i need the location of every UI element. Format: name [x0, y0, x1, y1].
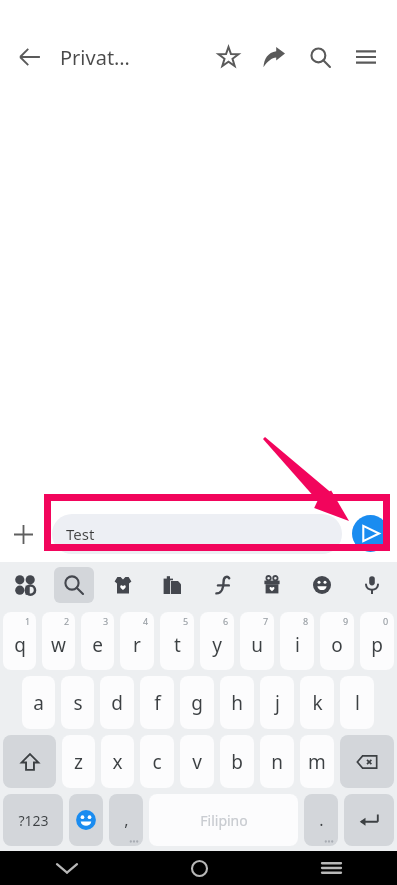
button[interactable]: Test — [52, 514, 342, 554]
button[interactable]: 6 — [200, 612, 234, 670]
staticText: x — [112, 749, 123, 775]
staticText: f — [154, 690, 161, 716]
button[interactable]: Enter — [344, 794, 394, 846]
staticText: 8 — [303, 615, 309, 627]
staticText: k — [312, 690, 323, 716]
staticText: 2 — [64, 615, 70, 627]
button[interactable]: Add attachment — [3, 514, 43, 554]
button[interactable]: g — [180, 676, 214, 729]
button[interactable]: ?123 — [3, 794, 63, 846]
staticText: m — [308, 749, 326, 775]
button[interactable]: GIF — [247, 562, 297, 607]
button[interactable]: Backspace — [340, 735, 394, 788]
button[interactable]: . — [304, 794, 338, 846]
button[interactable]: , — [109, 794, 143, 846]
button[interactable]: v — [180, 735, 214, 788]
staticText: 1 — [25, 615, 31, 627]
button[interactable]: Emoji — [69, 794, 103, 846]
staticText: p — [371, 632, 383, 658]
staticText: Filipino — [200, 811, 248, 830]
staticText: 5 — [183, 615, 189, 627]
staticText: 3 — [103, 615, 109, 627]
staticText: i — [295, 632, 300, 658]
button[interactable]: a — [22, 676, 55, 729]
button[interactable]: Voice input — [347, 562, 397, 607]
button[interactable]: Favorite — [205, 34, 251, 80]
button[interactable]: s — [61, 676, 94, 729]
staticText: t — [174, 632, 181, 658]
staticText: 0 — [383, 615, 389, 627]
button[interactable]: x — [101, 735, 134, 788]
button[interactable]: j — [260, 676, 294, 729]
staticText: y — [212, 632, 222, 658]
staticText: 6 — [223, 615, 229, 627]
staticText: d — [111, 690, 123, 716]
staticText: c — [152, 749, 162, 775]
button[interactable]: Recent apps — [265, 851, 397, 885]
staticText: r — [133, 632, 141, 658]
button[interactable]: b — [220, 735, 254, 788]
staticText: u — [251, 632, 263, 658]
staticText: l — [355, 690, 360, 716]
staticText: Privat… — [60, 44, 130, 71]
staticText: a — [33, 690, 44, 716]
button[interactable]: n — [260, 735, 294, 788]
button[interactable]: f — [140, 676, 174, 729]
button[interactable]: Font — [197, 562, 247, 607]
button[interactable]: Search — [49, 562, 98, 607]
button[interactable]: Share — [251, 34, 297, 80]
button[interactable]: 9 — [320, 612, 354, 670]
button[interactable]: Emoji — [297, 562, 347, 607]
button[interactable]: Filipino — [149, 794, 298, 846]
button[interactable]: l — [340, 676, 374, 729]
button[interactable]: d — [100, 676, 134, 729]
button[interactable]: Privat… — [60, 35, 130, 79]
button[interactable]: c — [140, 735, 174, 788]
button[interactable]: h — [220, 676, 254, 729]
staticText: . — [319, 809, 324, 831]
staticText: j — [275, 690, 280, 716]
staticText: 4 — [143, 615, 149, 627]
button[interactable]: Clipboard — [147, 562, 197, 607]
button[interactable]: 0 — [360, 612, 394, 670]
staticText: 7 — [263, 615, 269, 627]
button[interactable]: z — [62, 735, 95, 788]
button[interactable]: 5 — [160, 612, 194, 670]
button[interactable]: Back — [8, 35, 52, 79]
button[interactable]: 1 — [3, 612, 36, 670]
staticText: h — [231, 690, 243, 716]
staticText: b — [231, 749, 243, 775]
staticText: 9 — [343, 615, 349, 627]
button[interactable]: Home — [133, 851, 265, 885]
button[interactable]: Shift — [3, 735, 56, 788]
button[interactable]: m — [300, 735, 334, 788]
button[interactable]: 2 — [42, 612, 75, 670]
staticText: n — [271, 749, 283, 775]
button[interactable]: Send — [352, 515, 389, 552]
staticText: o — [331, 632, 343, 658]
staticText: q — [14, 632, 26, 658]
button[interactable]: Hide keyboard — [0, 851, 133, 885]
staticText: ?123 — [18, 811, 49, 830]
button[interactable]: 8 — [280, 612, 314, 670]
staticText: s — [73, 690, 83, 716]
button[interactable]: Apps — [0, 562, 49, 607]
staticText: e — [92, 632, 103, 658]
button[interactable]: k — [300, 676, 334, 729]
staticText: v — [192, 749, 202, 775]
button[interactable]: Search — [297, 34, 343, 80]
staticText: g — [191, 690, 203, 716]
staticText: z — [74, 749, 83, 775]
button[interactable]: More options — [343, 34, 389, 80]
button[interactable]: 3 — [81, 612, 114, 670]
staticText: w — [51, 632, 66, 658]
staticText: Test — [66, 524, 95, 544]
button[interactable]: 7 — [240, 612, 274, 670]
button[interactable]: Stickers — [98, 562, 147, 607]
staticText: , — [124, 809, 129, 831]
button[interactable]: 4 — [120, 612, 154, 670]
